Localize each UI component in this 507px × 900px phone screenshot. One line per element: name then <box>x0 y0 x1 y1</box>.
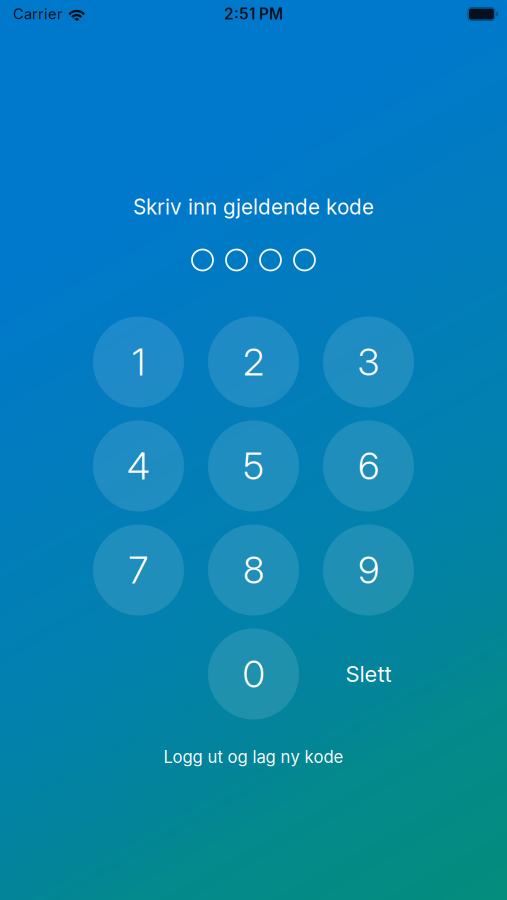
staticText: 1 <box>132 339 145 385</box>
staticText: Skriv inn gjeldende kode <box>133 194 374 219</box>
button[interactable]: 1 <box>81 310 196 414</box>
staticText: Carrier <box>13 5 63 23</box>
staticText: 7 <box>128 547 148 593</box>
button[interactable]: 4 <box>81 414 196 518</box>
staticText: 5 <box>243 443 264 489</box>
button[interactable]: Logg ut og lag ny kode <box>149 747 357 767</box>
button[interactable]: 0 <box>196 622 311 726</box>
staticText: 0 <box>242 651 264 697</box>
staticText: 9 <box>358 547 379 593</box>
button[interactable]: 8 <box>196 518 311 622</box>
staticText: 8 <box>243 547 264 593</box>
button[interactable]: 5 <box>196 414 311 518</box>
staticText: Logg ut og lag ny kode <box>163 747 343 767</box>
staticText: 3 <box>357 339 379 385</box>
staticText: 2:51 PM <box>224 5 283 23</box>
button[interactable]: 3 <box>311 310 426 414</box>
button[interactable]: 7 <box>81 518 196 622</box>
staticText: Slett <box>345 661 391 687</box>
button[interactable]: Slett <box>311 622 426 726</box>
staticText: 4 <box>127 443 150 489</box>
button[interactable]: 6 <box>311 414 426 518</box>
button[interactable]: 2 <box>196 310 311 414</box>
button[interactable]: 9 <box>311 518 426 622</box>
staticText: 6 <box>358 443 379 489</box>
staticText: 2 <box>243 339 264 385</box>
